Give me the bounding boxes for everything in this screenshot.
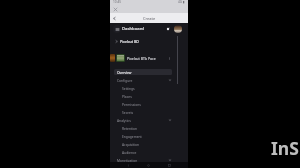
button[interactable]: Profile <box>174 25 182 33</box>
button[interactable]: Pixelcut BTb Pace <box>110 52 188 64</box>
staticText: Settings <box>122 86 135 90</box>
button[interactable]: Acquisition <box>114 141 172 147</box>
staticText: Pixelcut BTb Pace <box>127 56 156 61</box>
staticText: Overview <box>117 70 132 74</box>
button[interactable]: Home <box>138 162 159 168</box>
staticText: Places <box>122 94 132 98</box>
button[interactable]: Recents <box>159 162 180 168</box>
button[interactable]: Configure <box>114 77 172 83</box>
button[interactable]: More options <box>166 52 172 64</box>
staticText: Permissions <box>122 102 141 106</box>
staticText: Retention <box>122 126 138 130</box>
button[interactable]: Close <box>112 6 118 12</box>
button[interactable]: Retention <box>114 125 172 131</box>
button[interactable]: Engagement <box>114 133 172 139</box>
staticText: Configure <box>117 78 133 82</box>
button[interactable]: Menu <box>113 25 121 33</box>
button[interactable]: Audience <box>114 149 172 155</box>
button[interactable]: Permissions <box>114 101 172 107</box>
button[interactable]: Overview <box>114 69 172 75</box>
button[interactable]: Monetization <box>114 157 172 163</box>
button[interactable]: Notifications <box>164 25 171 32</box>
staticText: 4G ▮ <box>178 0 185 4</box>
button[interactable]: Settings <box>114 85 172 91</box>
button[interactable]: Places <box>114 93 172 99</box>
staticText: Engagement <box>122 134 142 138</box>
staticText: InSh <box>271 136 300 160</box>
staticText: Monetization <box>117 158 138 162</box>
staticText: Create <box>143 16 156 21</box>
button[interactable]: Analytics <box>114 117 172 123</box>
staticText: Audience <box>122 150 137 154</box>
staticText: Analytics <box>117 118 131 122</box>
staticText: Pixelcut BD <box>120 39 139 44</box>
button[interactable]: Back <box>111 13 118 23</box>
staticText: Dashboard <box>122 26 144 32</box>
staticText: 10:45 <box>113 0 122 4</box>
staticText: Secrets <box>122 110 134 114</box>
staticText: Acquisition <box>122 142 140 146</box>
button[interactable]: Secrets <box>114 109 172 115</box>
